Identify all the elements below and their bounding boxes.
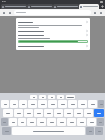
button[interactable]: Key xyxy=(28,100,37,108)
button[interactable]: Key xyxy=(68,100,77,108)
button[interactable] xyxy=(1,4,27,9)
button[interactable]: Return xyxy=(94,109,104,117)
button[interactable]: Shortcut xyxy=(30,95,37,99)
button[interactable]: Key xyxy=(38,100,47,108)
button[interactable] xyxy=(18,44,88,48)
button[interactable]: Back xyxy=(2,11,6,15)
button[interactable]: Key xyxy=(57,118,66,126)
button[interactable]: Hide keyboard xyxy=(95,127,103,135)
button[interactable]: Key xyxy=(48,100,57,108)
button[interactable]: Key xyxy=(18,118,26,126)
button[interactable]: Menu xyxy=(99,11,103,15)
button[interactable]: Backspace xyxy=(98,100,104,108)
button[interactable]: Key xyxy=(19,100,27,108)
button[interactable]: Key xyxy=(78,100,87,108)
button[interactable]: Shift xyxy=(1,118,8,126)
button[interactable]: Shift xyxy=(97,118,104,126)
button[interactable]: Key xyxy=(87,118,96,126)
button[interactable]: Shortcut xyxy=(57,95,64,99)
button[interactable]: Key xyxy=(37,118,46,126)
button[interactable] xyxy=(14,10,91,15)
button[interactable] xyxy=(27,4,53,9)
button[interactable]: Key xyxy=(9,118,17,126)
button[interactable] xyxy=(18,29,88,33)
button[interactable]: New tab xyxy=(100,4,104,8)
button[interactable]: Key xyxy=(10,100,18,108)
button[interactable] xyxy=(79,4,99,9)
button[interactable] xyxy=(18,38,88,43)
button[interactable]: Key xyxy=(34,109,43,117)
button[interactable]: Key xyxy=(74,109,83,117)
button[interactable]: Shortcut xyxy=(39,95,46,99)
button[interactable]: Key xyxy=(64,109,73,117)
button[interactable] xyxy=(18,33,88,37)
button[interactable]: Shortcut xyxy=(48,95,55,99)
button[interactable]: Key xyxy=(3,109,13,117)
staticText: 9:41 xyxy=(2,0,6,3)
button[interactable]: Key xyxy=(44,109,53,117)
button[interactable]: Space xyxy=(12,127,85,135)
button[interactable] xyxy=(18,20,88,24)
button[interactable]: Key xyxy=(47,118,56,126)
button[interactable]: Key xyxy=(14,109,23,117)
button[interactable]: Key xyxy=(24,109,33,117)
button[interactable]: Key xyxy=(88,100,97,108)
button[interactable]: Key xyxy=(67,118,76,126)
button[interactable]: Key xyxy=(54,109,63,117)
button[interactable]: Key xyxy=(77,118,86,126)
button[interactable]: Numbers xyxy=(86,127,94,135)
button[interactable]: Reload xyxy=(8,11,12,15)
button[interactable]: Bookmark xyxy=(93,11,97,15)
button[interactable]: Key xyxy=(27,118,36,126)
button[interactable]: Numbers xyxy=(2,127,11,135)
button[interactable]: Key xyxy=(1,100,9,108)
button[interactable] xyxy=(53,4,79,9)
button[interactable]: Shortcut xyxy=(66,95,75,99)
button[interactable]: Key xyxy=(58,100,67,108)
button[interactable]: Key xyxy=(84,109,93,117)
